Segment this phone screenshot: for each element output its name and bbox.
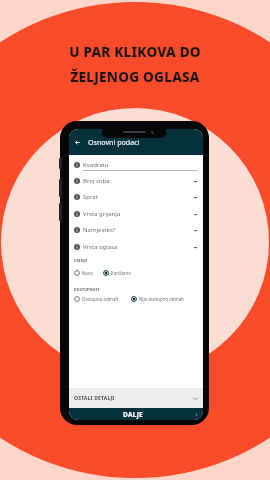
button[interactable]: Dostupno odmah: [74, 296, 119, 302]
staticText: STANJE: [74, 258, 88, 263]
button[interactable]: Broj soba: [69, 173, 203, 189]
staticText: Vrsta grijanja: [83, 210, 121, 218]
button[interactable]: Korišteno: [103, 270, 131, 276]
staticText: Broj soba: [83, 177, 110, 185]
button[interactable]: Kvadratu: [69, 157, 203, 173]
staticText: Korišteno: [111, 270, 131, 276]
staticText: Namjestes?: [83, 226, 116, 234]
staticText: Nije dostupno odmah: [139, 296, 184, 302]
staticText: DOSTUPNOST: [74, 287, 100, 292]
staticText: Kvadratu: [83, 161, 109, 169]
button[interactable]: Back: [72, 137, 82, 147]
button[interactable]: DALJE: [69, 408, 203, 420]
staticText: DALJE: [123, 410, 144, 419]
staticText: Novo: [82, 270, 93, 276]
button[interactable]: OSTALI DETALJI: [69, 388, 203, 408]
staticText: OSTALI DETALJI: [74, 395, 115, 402]
staticText: Vrsta oglasa: [83, 243, 118, 251]
button[interactable]: Nije dostupno odmah: [131, 296, 184, 302]
button[interactable]: Sprat: [69, 189, 203, 205]
staticText: U PAR KLIKOVA DO: [69, 42, 201, 61]
button[interactable]: Vrsta grijanja: [69, 206, 203, 222]
staticText: Sprat: [83, 193, 98, 201]
staticText: ŽELJENOG OGLASA: [70, 67, 200, 86]
staticText: Osnovni podaci: [88, 137, 140, 147]
button[interactable]: Namjestes?: [69, 222, 203, 238]
staticText: Dostupno odmah: [82, 296, 119, 302]
button[interactable]: Novo: [74, 270, 93, 276]
button[interactable]: Vrsta oglasa: [69, 239, 203, 255]
